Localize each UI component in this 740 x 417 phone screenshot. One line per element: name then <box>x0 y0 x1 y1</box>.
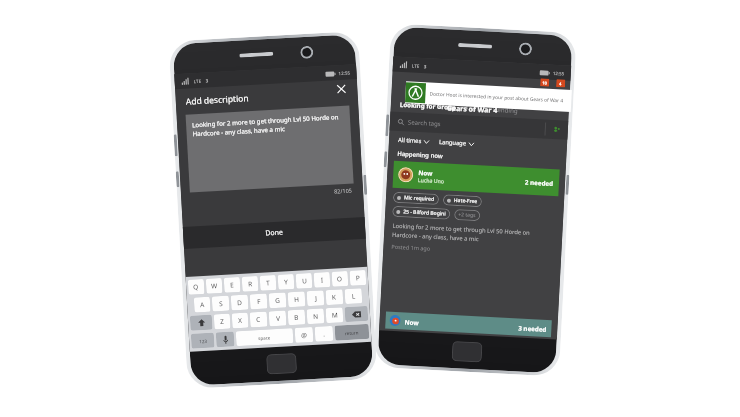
staticText: Looking for 2 more to get through Lvl 50… <box>192 112 343 138</box>
button[interactable]: E <box>224 277 240 293</box>
staticText: W <box>211 281 218 291</box>
staticText: E <box>230 280 234 289</box>
button[interactable]: O <box>331 271 348 287</box>
staticText: S <box>219 299 223 308</box>
button[interactable]: Arena <box>465 103 483 112</box>
staticText: 25 - Bilford Bogini <box>403 208 446 217</box>
staticText: J <box>315 294 317 303</box>
staticText: 12:55 <box>553 70 565 76</box>
button[interactable]: @ <box>295 327 313 343</box>
staticText: 12:55 <box>338 69 351 76</box>
button[interactable]: Done <box>183 217 366 249</box>
staticText: +2 tags <box>458 211 476 219</box>
button[interactable]: P <box>349 270 366 286</box>
staticText: Mic required <box>404 194 435 203</box>
staticText: Happening now <box>397 150 443 160</box>
staticText: P <box>356 273 360 282</box>
staticText: space <box>258 334 271 341</box>
button[interactable]: Looking for Group <box>400 100 456 111</box>
staticText: 3 <box>205 77 209 84</box>
button[interactable]: Now <box>392 161 560 196</box>
button[interactable]: I <box>314 272 330 288</box>
button[interactable]: Now <box>385 311 552 337</box>
staticText: 3 needed <box>518 323 548 333</box>
button[interactable]: Search tags <box>389 111 545 139</box>
button[interactable]: Trending <box>492 105 518 114</box>
button[interactable]: Z <box>214 314 230 329</box>
button[interactable]: Language <box>439 138 474 148</box>
button[interactable]: S <box>212 296 229 311</box>
button[interactable]: B <box>288 309 305 325</box>
staticText: return <box>345 329 359 336</box>
button[interactable]: +2 tags <box>454 209 480 221</box>
button[interactable]: F <box>250 293 267 309</box>
button[interactable]: space <box>236 328 293 346</box>
staticText: M <box>332 310 338 320</box>
button[interactable]: Home <box>451 341 482 362</box>
button[interactable]: Doctor Hoot is interested in your post a… <box>405 81 572 112</box>
button[interactable]: Mic required <box>393 192 439 205</box>
staticText: Add description <box>185 92 249 108</box>
staticText: Hate-Free <box>454 197 478 205</box>
staticText: I <box>321 275 324 284</box>
button[interactable]: D <box>231 294 248 310</box>
button[interactable]: X <box>232 313 248 328</box>
staticText: Search tags <box>408 118 441 128</box>
staticText: Gears of War 4 <box>446 103 498 116</box>
staticText: 2 needed <box>525 178 554 187</box>
button[interactable]: Y <box>278 274 294 290</box>
staticText: A <box>200 300 205 309</box>
staticText: 123 <box>199 338 207 344</box>
button[interactable]: Voice input <box>216 331 234 347</box>
staticText: C <box>256 315 261 324</box>
button[interactable]: R <box>242 276 258 292</box>
button[interactable]: A <box>194 297 211 313</box>
button[interactable]: W <box>206 278 222 294</box>
staticText: G <box>275 296 280 305</box>
button[interactable]: C <box>250 311 267 327</box>
button[interactable]: People <box>545 120 568 140</box>
button[interactable]: K <box>326 289 343 305</box>
staticText: T <box>266 278 270 287</box>
staticText: 82/105 <box>334 187 352 195</box>
staticText: B <box>294 313 299 322</box>
staticText: Now <box>404 317 420 326</box>
staticText: @ <box>301 330 307 340</box>
staticText: Posted 1m ago <box>391 243 431 252</box>
button[interactable]: L <box>344 288 362 304</box>
button[interactable]: return <box>335 324 369 341</box>
button[interactable]: . <box>315 326 333 342</box>
button[interactable]: Q <box>188 279 205 295</box>
staticText: X <box>238 316 242 325</box>
staticText: Y <box>284 277 288 286</box>
staticText: N <box>313 312 318 321</box>
button[interactable]: Hate-Free <box>443 194 482 207</box>
button[interactable]: M <box>326 307 343 323</box>
button[interactable]: 123 <box>191 332 215 349</box>
button[interactable]: T <box>260 275 276 291</box>
button[interactable]: V <box>269 310 286 326</box>
button[interactable]: Shift <box>190 315 213 331</box>
button[interactable]: Backspace <box>344 306 368 322</box>
staticText: All times <box>398 136 422 145</box>
button[interactable]: H <box>288 291 305 307</box>
staticText: . <box>323 329 325 338</box>
button[interactable]: Looking for 2 more to get through Lvl 50… <box>185 106 354 193</box>
staticText: 4 <box>559 81 562 86</box>
staticText: Done <box>265 227 283 238</box>
button[interactable]: N <box>307 308 324 324</box>
button[interactable]: Home <box>266 353 297 374</box>
button[interactable]: All times <box>398 136 429 145</box>
button[interactable]: J <box>307 290 324 306</box>
button[interactable]: 25 - Bilford Bogini <box>392 206 450 220</box>
staticText: D <box>237 298 242 307</box>
staticText: Z <box>220 317 224 326</box>
button[interactable]: U <box>296 273 312 289</box>
staticText: Looking for 2 more to get through Lvl 50… <box>392 222 552 246</box>
button[interactable]: Close <box>334 82 349 96</box>
staticText: Language <box>439 138 467 147</box>
staticText: Q <box>193 282 199 291</box>
staticText: U <box>302 276 307 285</box>
staticText: 3 <box>424 63 427 69</box>
button[interactable]: G <box>269 292 286 308</box>
